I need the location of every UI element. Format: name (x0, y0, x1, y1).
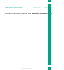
staticText: ctetur adipiscing (32, 11, 53, 14)
button[interactable]: Sign in Help (33, 5, 49, 8)
button[interactable]: Getting started (5, 5, 23, 8)
staticText: Lorem ipsum dolor sit amet, conse (5, 11, 47, 14)
